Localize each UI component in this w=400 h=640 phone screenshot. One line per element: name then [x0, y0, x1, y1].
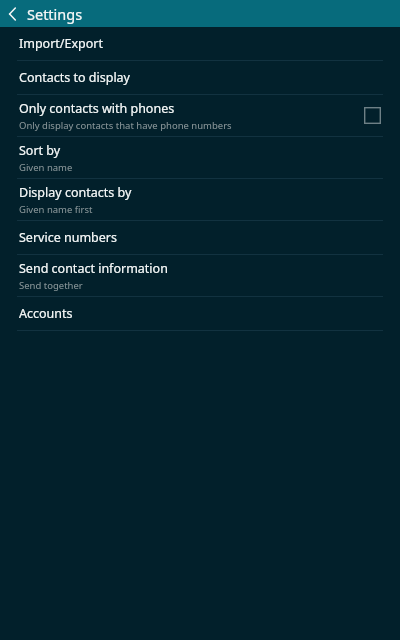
button[interactable]: Only contacts with phones	[0, 95, 400, 136]
staticText: Given name	[19, 161, 73, 174]
button[interactable]: Contacts to display	[0, 61, 400, 94]
button[interactable]: Accounts	[0, 297, 400, 330]
staticText: Send together	[19, 279, 83, 292]
button[interactable]: Display contacts by	[0, 179, 400, 220]
staticText: Accounts	[19, 305, 73, 322]
staticText: Service numbers	[19, 229, 117, 246]
button[interactable]: Service numbers	[0, 221, 400, 254]
button[interactable]: Import/Export	[0, 27, 400, 60]
staticText: Only display contacts that have phone nu…	[19, 119, 232, 132]
staticText: Only contacts with phones	[19, 100, 175, 117]
button[interactable]: Back	[0, 3, 25, 25]
staticText: Sort by	[19, 142, 61, 159]
staticText: Display contacts by	[19, 184, 132, 201]
staticText: Settings	[27, 4, 83, 24]
button[interactable]: Sort by	[0, 137, 400, 178]
staticText: Contacts to display	[19, 69, 130, 86]
staticText: Import/Export	[19, 35, 103, 52]
staticText: Send contact information	[19, 260, 168, 277]
staticText: Given name first	[19, 203, 93, 216]
button[interactable]: Send contact information	[0, 255, 400, 296]
